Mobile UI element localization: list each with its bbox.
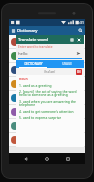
button[interactable] — [9, 119, 85, 132]
staticText: Translate word — [18, 37, 48, 43]
staticText: /həˈləʊ/ — [44, 70, 56, 74]
button[interactable]: Close — [76, 37, 82, 43]
button[interactable]: 3. used when you are answering the telep… — [19, 99, 81, 109]
staticText: 4. used to get someone's attention — [19, 109, 74, 113]
staticText: 5. used to express surprise — [19, 115, 62, 119]
staticText: DICTIONARY — [24, 62, 43, 66]
button[interactable]: 1. used as a greeting — [19, 83, 81, 89]
button[interactable]: Back — [22, 155, 30, 163]
button[interactable] — [9, 105, 85, 118]
button[interactable]: Translate — [75, 50, 82, 57]
staticText: Dictionary — [17, 28, 38, 34]
button[interactable] — [9, 35, 85, 48]
button[interactable]: DICTIONARY — [16, 60, 50, 68]
button[interactable]: 5. used to express surprise — [19, 115, 81, 121]
button[interactable]: 4. used to get someone's attention — [19, 109, 81, 115]
button[interactable]: Recent apps — [64, 155, 72, 163]
staticText: USAGE — [62, 62, 72, 66]
staticText: 3. used when you are answering the telep… — [19, 99, 81, 107]
button[interactable]: Home — [43, 155, 51, 163]
staticText: 1. used as a greeting — [19, 83, 52, 87]
staticText: 4:31 — [77, 20, 84, 25]
staticText: EN — [77, 70, 81, 74]
button[interactable] — [9, 133, 85, 146]
staticText: 2. [count] the act of saying the word he… — [19, 89, 81, 97]
button[interactable] — [9, 49, 85, 62]
button[interactable]: EN — [77, 70, 81, 74]
staticText: Enter word to translate — [18, 45, 53, 49]
button[interactable]: Settings — [69, 37, 75, 43]
staticText: hello — [18, 51, 75, 57]
staticText: noun — [19, 76, 28, 81]
button[interactable] — [9, 91, 85, 104]
other: Menu — [11, 28, 16, 33]
other: Search — [78, 28, 83, 33]
button[interactable]: 2. [count] the act of saying the word he… — [19, 89, 81, 99]
button[interactable]: USAGE — [50, 60, 84, 68]
button[interactable] — [9, 63, 85, 76]
button[interactable] — [9, 77, 85, 90]
button[interactable]: Menu — [9, 26, 85, 35]
